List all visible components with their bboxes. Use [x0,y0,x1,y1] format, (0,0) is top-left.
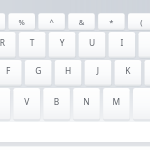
button[interactable]: Close-up photo of a white keyboard [0,0,150,150]
